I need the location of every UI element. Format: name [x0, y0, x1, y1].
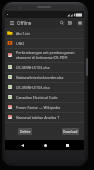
button[interactable]: Nationalinterlocknorder.xlsx — [5, 72, 84, 82]
button[interactable]: Recents — [61, 140, 73, 150]
staticText: OC-M3NH-E103.xlsx — [16, 65, 50, 70]
button[interactable]: Power Factor — Wikipedia — [5, 102, 84, 112]
staticText: Canadian Electrical Code — [16, 95, 58, 100]
button[interactable]: Abc1.txt — [5, 28, 84, 38]
staticText: OC-M3NH-E103.xlsx — [16, 85, 50, 90]
button[interactable]: Home — [39, 140, 51, 150]
staticText: Nationalinterlocknorder.xlsx — [16, 75, 64, 80]
button[interactable]: Perkembangan arti pembangunan — [5, 48, 84, 62]
staticText: Download — [63, 130, 78, 134]
button[interactable]: Search — [57, 18, 66, 28]
staticText: ekonomi di Indonesia (05.PDF) — [16, 55, 68, 60]
button[interactable]: Settings — [75, 18, 84, 28]
staticText: Abc1.txt — [16, 31, 30, 36]
button[interactable]: Delete — [18, 128, 32, 135]
button[interactable]: Nasional tabilan Analisa T — [5, 112, 84, 122]
button[interactable]: OC-M3NH-E103.xlsx — [5, 82, 84, 92]
button[interactable]: UNO — [5, 38, 84, 48]
button[interactable]: Menu — [7, 18, 16, 28]
staticText: Offline — [17, 20, 32, 26]
staticText: Nasional tabilan Analisa T — [16, 115, 60, 120]
button[interactable]: Back — [16, 140, 28, 150]
button[interactable]: Download — [62, 128, 79, 135]
button[interactable]: Select all — [65, 18, 74, 28]
staticText: Perkembangan arti pembangunan — [16, 50, 75, 55]
staticText: Delete — [20, 129, 31, 134]
button[interactable]: Canadian Electrical Code — [5, 92, 84, 102]
staticText: Power Factor — Wikipedia — [16, 105, 61, 110]
staticText: UNO — [16, 41, 25, 46]
button[interactable]: OC-M3NH-E103.xlsx — [5, 62, 84, 72]
